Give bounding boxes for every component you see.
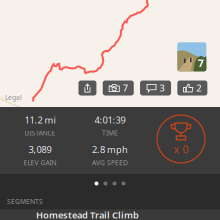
- staticText: ELEV GAIN: [23, 158, 56, 167]
- button[interactable]: Comments: [140, 80, 171, 95]
- button[interactable]: Share: [78, 80, 96, 95]
- button[interactable]: Photos: [103, 80, 134, 95]
- staticText: Homestead Trail Climb: [36, 209, 139, 220]
- staticText: 2: [196, 82, 201, 94]
- staticText: 4:01:39: [94, 114, 125, 126]
- staticText: 7: [123, 82, 128, 94]
- staticText: 2.8 mph: [92, 143, 128, 156]
- staticText: 7: [198, 56, 204, 70]
- button[interactable]: Homestead Trail Climb: [0, 209, 220, 220]
- staticText: TIME: [102, 129, 118, 137]
- staticText: DISTANCE: [24, 129, 55, 137]
- staticText: AVG SPEED: [92, 158, 128, 167]
- staticText: x 0: [173, 142, 188, 156]
- staticText: 11.2 mi: [24, 114, 55, 126]
- staticText: SEGMENTS: [7, 197, 43, 206]
- button[interactable]: Kudos: [177, 80, 207, 95]
- staticText: 3: [160, 82, 165, 94]
- staticText: 3,089: [28, 143, 51, 156]
- staticText: Legal: [5, 93, 22, 102]
